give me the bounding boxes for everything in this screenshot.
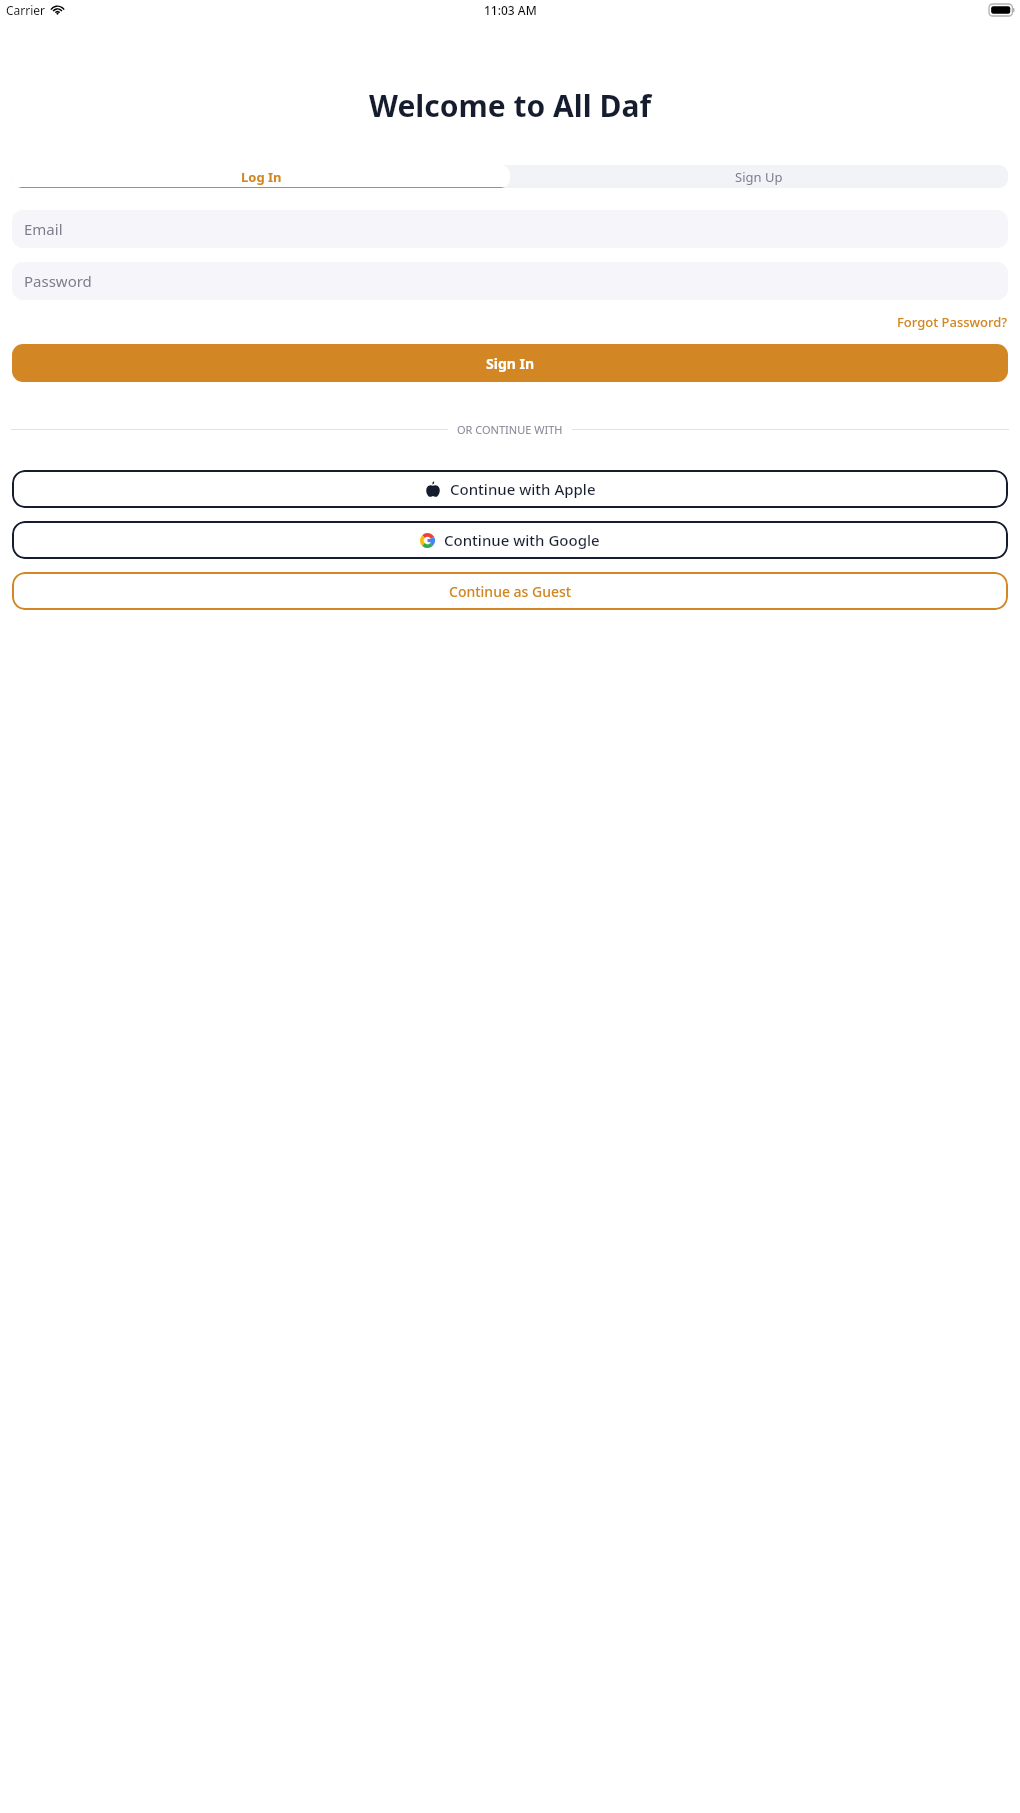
staticText: Welcome to All Daf: [0, 85, 1020, 126]
button[interactable]: Sign Up: [510, 165, 1008, 188]
staticText: Carrier: [6, 2, 46, 18]
staticText: Continue with Google: [444, 530, 600, 550]
button[interactable]: Forgot Password?: [897, 313, 1008, 331]
button[interactable]: Continue with Google: [12, 521, 1008, 559]
button[interactable]: Continue with Apple: [12, 470, 1008, 508]
staticText: Continue with Apple: [450, 479, 596, 499]
staticText: Continue as Guest: [449, 582, 572, 601]
staticText: Sign In: [486, 354, 535, 373]
button[interactable]: Email: [12, 210, 1008, 248]
button[interactable]: Sign In: [12, 344, 1008, 382]
staticText: Email: [24, 219, 63, 239]
staticText: Sign Up: [735, 168, 783, 186]
staticText: OR CONTINUE WITH: [457, 422, 563, 437]
staticText: Password: [24, 271, 92, 291]
staticText: 11:03 AM: [484, 2, 537, 18]
button[interactable]: Password: [12, 262, 1008, 300]
button[interactable]: Log In: [12, 165, 510, 188]
button[interactable]: Continue as Guest: [12, 572, 1008, 610]
staticText: Log In: [241, 168, 282, 186]
staticText: Forgot Password?: [897, 313, 1008, 331]
